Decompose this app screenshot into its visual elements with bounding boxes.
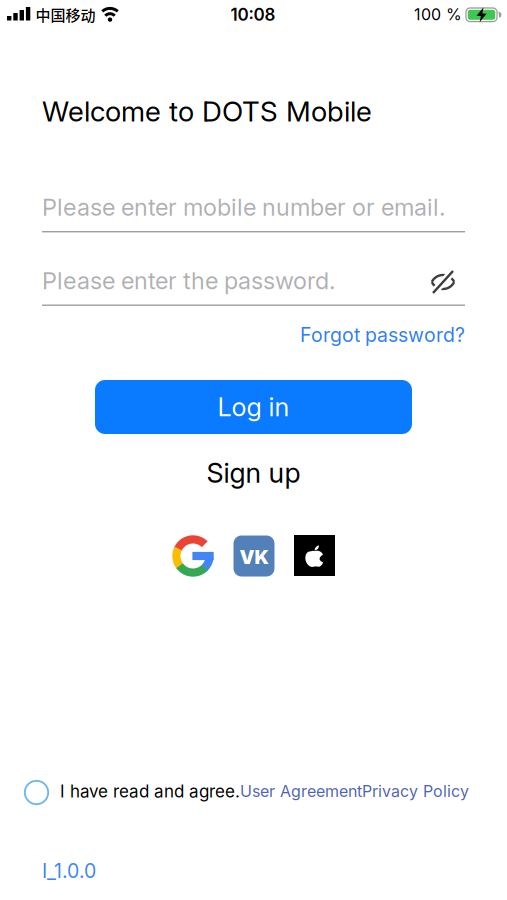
button[interactable]: Forgot password?: [42, 323, 465, 347]
staticText: 10:08: [230, 4, 275, 25]
staticText: 100 %: [414, 5, 462, 24]
button[interactable]: Agree to terms: [23, 779, 49, 805]
staticText: Please enter the password.: [42, 266, 335, 295]
staticText: VK: [239, 545, 268, 568]
button[interactable]: Sign in with Apple: [294, 535, 335, 576]
staticText: I have read and agree.: [60, 781, 240, 802]
staticText: I_1.0.0: [42, 859, 96, 883]
button[interactable]: Sign in with VK: [233, 535, 274, 576]
button[interactable]: Show password: [425, 266, 461, 298]
button[interactable]: Sign up: [206, 457, 300, 489]
staticText: Privacy Policy: [362, 782, 469, 801]
staticText: Please enter mobile number or email.: [42, 193, 445, 221]
button[interactable]: User Agreement: [240, 782, 362, 801]
button[interactable]: Log in: [95, 380, 412, 434]
staticText: Log in: [217, 392, 289, 422]
staticText: Sign up: [206, 457, 300, 489]
button[interactable]: Sign in with Google: [172, 535, 214, 577]
staticText: 中国移动: [35, 4, 95, 25]
staticText: User Agreement: [240, 782, 362, 801]
button[interactable]: Privacy Policy: [362, 782, 469, 801]
staticText: Welcome to DOTS Mobile: [42, 94, 372, 128]
staticText: Forgot password?: [300, 323, 465, 347]
